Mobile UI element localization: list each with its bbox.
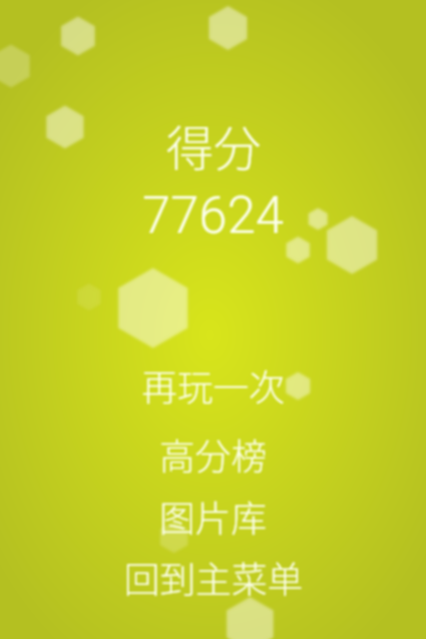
staticText: 回到主菜单 <box>124 551 303 597</box>
staticText: 得分 <box>166 111 261 180</box>
staticText: 77624 <box>142 186 284 246</box>
staticText: 再玩一次 <box>141 359 285 405</box>
button[interactable]: 图片库 <box>0 490 426 536</box>
button[interactable]: 再玩一次 <box>0 359 426 405</box>
staticText: 高分榜 <box>159 428 267 474</box>
staticText: 图片库 <box>159 490 267 536</box>
button[interactable]: 回到主菜单 <box>0 551 426 597</box>
button[interactable]: 高分榜 <box>0 428 426 474</box>
